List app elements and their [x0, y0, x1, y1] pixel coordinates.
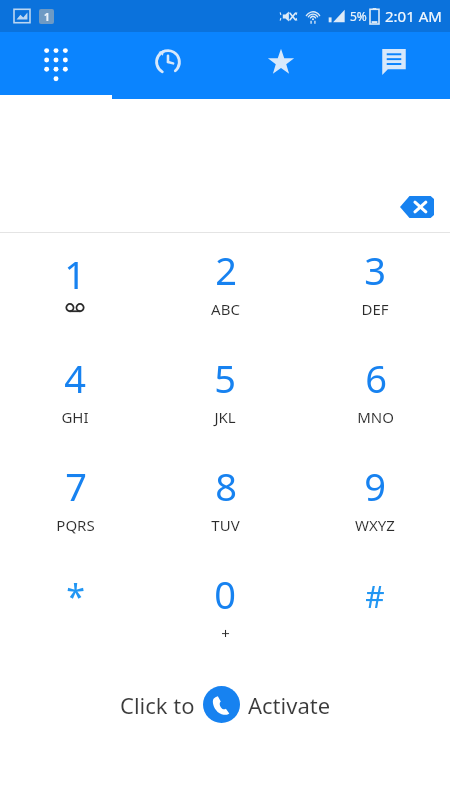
staticText: ABC: [211, 299, 240, 319]
button[interactable]: 2: [150, 233, 300, 341]
button[interactable]: 9: [300, 449, 450, 557]
staticText: 3: [364, 244, 386, 296]
staticText: #: [365, 576, 385, 617]
staticText: 7: [65, 460, 87, 512]
button[interactable]: 0: [150, 557, 300, 665]
staticText: DEF: [361, 299, 389, 319]
staticText: 5%: [350, 8, 367, 24]
button[interactable]: 7: [0, 449, 150, 557]
button[interactable]: 8: [150, 449, 300, 557]
staticText: WXYZ: [355, 515, 395, 535]
staticText: 6: [365, 352, 387, 404]
staticText: PQRS: [56, 515, 95, 535]
button[interactable]: Dialpad: [0, 32, 112, 99]
button[interactable]: Click to: [112, 682, 339, 727]
staticText: Click to: [120, 690, 195, 720]
staticText: JKL: [214, 407, 236, 427]
staticText: 4: [64, 352, 86, 404]
staticText: Activate: [248, 690, 331, 720]
staticText: 2: [215, 244, 237, 296]
button[interactable]: 4: [0, 341, 150, 449]
staticText: GHI: [61, 407, 89, 427]
button[interactable]: 5: [150, 341, 300, 449]
staticText: 2:01 AM: [385, 6, 442, 26]
button[interactable]: Favorites: [224, 32, 337, 99]
button[interactable]: Recents: [112, 32, 224, 99]
staticText: 8: [215, 460, 237, 512]
staticText: 9: [364, 460, 386, 512]
staticText: 1: [44, 10, 50, 24]
staticText: 0: [214, 568, 236, 620]
button[interactable]: Backspace: [400, 196, 434, 218]
staticText: 1: [64, 248, 86, 300]
button[interactable]: Messages: [337, 32, 450, 99]
staticText: TUV: [211, 515, 240, 535]
button[interactable]: 3: [300, 233, 450, 341]
button[interactable]: *: [0, 557, 150, 665]
staticText: MNO: [357, 407, 394, 427]
button[interactable]: 6: [300, 341, 450, 449]
button[interactable]: #: [300, 557, 450, 665]
staticText: 5: [214, 352, 236, 404]
staticText: *: [66, 573, 85, 619]
staticText: +: [221, 623, 230, 643]
button[interactable]: 1: [0, 233, 150, 341]
